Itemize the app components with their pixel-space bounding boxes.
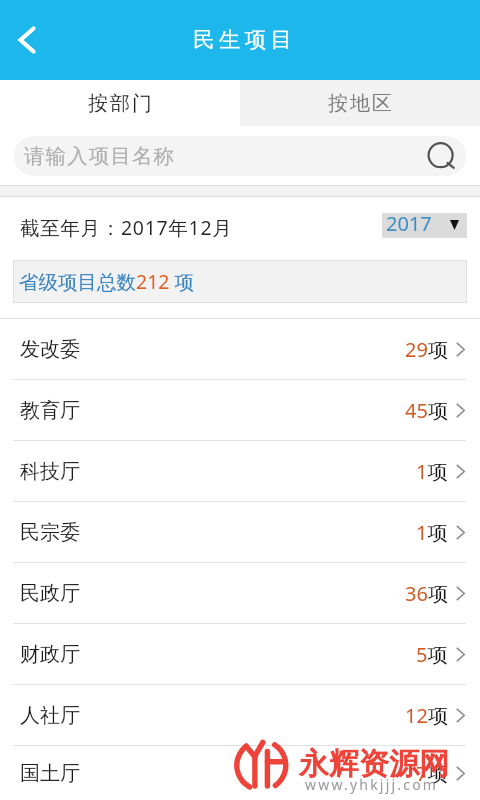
staticText: 5项 [416, 641, 448, 668]
staticText: 按地区 [327, 91, 393, 116]
staticText: 省级项目总数212 项 [19, 268, 195, 295]
staticText: 发改委 [20, 337, 80, 362]
staticText: 请输入项目名称 [24, 143, 176, 169]
staticText: 2017 [386, 210, 432, 235]
staticText: 45项 [405, 397, 448, 424]
button[interactable]: 民政厅 [0, 563, 480, 623]
button[interactable]: 科技厅 [0, 441, 480, 501]
button[interactable]: 国土厅 [0, 746, 480, 800]
staticText: 人社厅 [20, 703, 80, 728]
button[interactable]: Back [0, 13, 54, 67]
button[interactable]: 按地区 [240, 80, 480, 126]
staticText: 国土厅 [20, 761, 80, 786]
button[interactable]: 人社厅 [0, 685, 480, 745]
staticText: 教育厅 [20, 398, 80, 423]
staticText: 36项 [405, 580, 448, 607]
button[interactable]: 请输入项目名称 [14, 136, 466, 176]
staticText: 财政厅 [20, 642, 80, 667]
staticText: 按部门 [87, 91, 153, 116]
staticText: 29项 [405, 336, 448, 363]
staticText: 科技厅 [20, 459, 80, 484]
button[interactable]: 教育厅 [0, 380, 480, 440]
staticText: 永辉资源网 [299, 745, 449, 783]
staticText: www.yhkjjj.com [305, 775, 439, 794]
staticText: 12项 [405, 702, 448, 729]
staticText: 民宗委 [20, 520, 80, 545]
staticText: 民生项目 [193, 26, 297, 53]
button[interactable]: 民宗委 [0, 502, 480, 562]
staticText: 截至年月：2017年12月 [20, 214, 233, 241]
button[interactable]: 2017 [382, 213, 467, 238]
staticText: 1项 [416, 458, 448, 485]
staticText: 民政厅 [20, 581, 80, 606]
button[interactable]: 省级项目总数212 项 [13, 260, 467, 303]
button[interactable]: 按部门 [0, 80, 240, 126]
staticText: 1项 [416, 519, 448, 546]
button[interactable]: 财政厅 [0, 624, 480, 684]
staticText: 7项 [416, 760, 448, 787]
button[interactable]: 发改委 [0, 319, 480, 379]
